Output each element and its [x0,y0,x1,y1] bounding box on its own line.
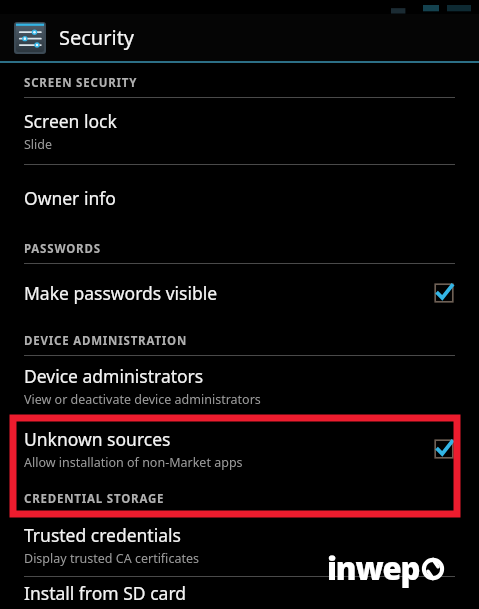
button[interactable]: Screen lock [0,98,479,164]
staticText: inwep [327,547,420,589]
staticText: Make passwords visible [24,281,218,305]
button[interactable]: Security [0,14,479,61]
button[interactable]: Trusted credentials [0,514,479,576]
staticText: Slide [24,136,53,153]
button[interactable]: Device administrators [0,356,479,416]
button[interactable]: Owner info [0,165,479,231]
staticText: Allow installation of non-Market apps [24,454,243,471]
staticText: Trusted credentials [24,523,181,547]
button[interactable]: Make passwords visible [0,264,479,321]
staticText: Install from SD card [24,581,187,605]
button[interactable]: Install from SD card [0,577,479,609]
staticText: PASSWORDS [24,241,101,257]
staticText: CREDENTIAL STORAGE [24,491,165,507]
staticText: DEVICE ADMINISTRATION [24,333,188,349]
staticText: Security [59,24,135,51]
other: Toggle Unknown sources [433,438,455,460]
staticText: Owner info [24,186,116,210]
staticText: Screen lock [24,109,117,133]
other: Toggle Make passwords visible [433,282,455,304]
staticText: Device administrators [24,364,204,388]
staticText: SCREEN SECURITY [24,75,138,91]
staticText: Display trusted CA certificates [24,550,199,567]
button[interactable]: Unknown sources [0,417,479,481]
staticText: Unknown sources [24,427,171,451]
staticText: View or deactivate device administrators [24,391,261,408]
